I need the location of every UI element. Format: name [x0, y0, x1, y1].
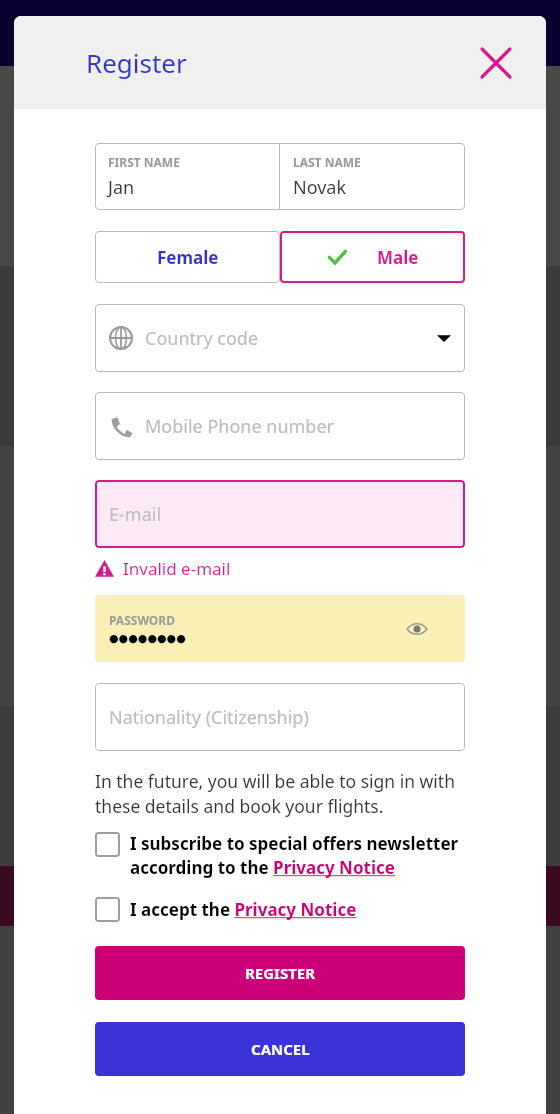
button[interactable]: Close	[474, 41, 518, 85]
staticText: Register	[86, 45, 187, 80]
button[interactable]: FIRST NAME	[95, 143, 279, 210]
staticText: Female	[157, 246, 219, 269]
staticText: FIRST NAME	[108, 154, 180, 170]
button[interactable]: LAST NAME	[280, 143, 465, 210]
button[interactable]: I accept the Privacy Notice	[95, 897, 465, 922]
button[interactable]: Female	[95, 231, 280, 283]
button[interactable]: Show password	[403, 615, 431, 643]
staticText: Jan	[108, 175, 135, 200]
button[interactable]: E-mail	[95, 480, 465, 548]
staticText: Novak	[293, 175, 347, 200]
staticText: Nationality (Citizenship)	[109, 705, 309, 730]
staticText: I subscribe to special offers newsletter…	[130, 832, 465, 879]
staticText: In the future, you will be able to sign …	[95, 769, 465, 818]
staticText: CANCEL	[251, 1039, 310, 1059]
button[interactable]: Mobile Phone number	[95, 392, 465, 460]
staticText: Invalid e-mail	[123, 557, 231, 580]
staticText: Male	[377, 246, 419, 269]
button[interactable]: PASSWORD	[95, 595, 465, 662]
button[interactable]: Nationality (Citizenship)	[95, 683, 465, 751]
staticText: REGISTER	[245, 963, 316, 983]
button[interactable]: CANCEL	[95, 1022, 465, 1076]
staticText: ●●●●●●●●	[109, 632, 186, 645]
staticText: Country code	[145, 326, 259, 351]
staticText: PASSWORD	[109, 612, 176, 628]
button[interactable]: I subscribe to special offers newsletter…	[95, 832, 465, 879]
staticText: I accept the Privacy Notice	[130, 898, 357, 921]
staticText: Mobile Phone number	[145, 414, 334, 439]
button[interactable]: Country code	[95, 304, 465, 372]
staticText: E-mail	[109, 502, 162, 527]
button[interactable]: Male	[280, 231, 465, 283]
staticText: LAST NAME	[293, 154, 361, 170]
button[interactable]: REGISTER	[95, 946, 465, 1000]
